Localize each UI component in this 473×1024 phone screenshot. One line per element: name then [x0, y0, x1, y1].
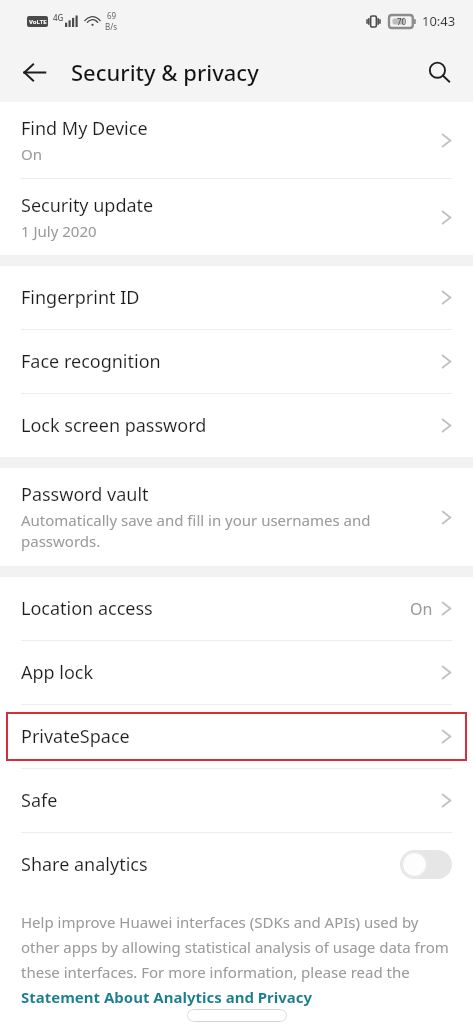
button[interactable]: Lock screen password [0, 394, 473, 457]
staticText: B/s [105, 21, 118, 32]
staticText: Safe [21, 788, 441, 813]
staticText: On [410, 598, 433, 620]
button[interactable]: Safe [0, 769, 473, 832]
staticText: 69 [107, 10, 117, 21]
button[interactable]: Security update [0, 179, 473, 255]
staticText: Automatically save and fill in your user… [21, 510, 429, 552]
staticText: 1 July 2020 [21, 221, 97, 241]
staticText: Security update [21, 193, 154, 218]
staticText: PrivateSpace [21, 724, 441, 749]
button[interactable]: Share analytics [0, 833, 473, 896]
button[interactable]: PrivateSpace [6, 712, 467, 761]
staticText: 4G [53, 12, 64, 23]
staticText: Share analytics [21, 852, 400, 877]
button[interactable]: Fingerprint ID [0, 266, 473, 329]
button[interactable]: Find My Device [0, 102, 473, 178]
staticText: Password vault [21, 482, 149, 507]
staticText: Help improve Huawei interfaces (SDKs and… [21, 912, 452, 1007]
button[interactable]: Password vault [0, 468, 473, 566]
button[interactable]: Location access [0, 577, 473, 640]
button[interactable]: Search [415, 48, 463, 96]
staticText: 70 [397, 16, 407, 27]
button[interactable]: App lock [0, 641, 473, 704]
staticText: On [21, 144, 42, 164]
staticText: 10:43 [422, 12, 456, 30]
staticText: Face recognition [21, 349, 441, 374]
staticText: Find My Device [21, 116, 148, 141]
button[interactable]: Back [10, 48, 58, 96]
button[interactable]: Face recognition [0, 330, 473, 393]
staticText: Security & privacy [71, 57, 259, 87]
staticText: App lock [21, 660, 441, 685]
staticText: Lock screen password [21, 413, 441, 438]
staticText: VoLTE [29, 18, 47, 26]
staticText: Fingerprint ID [21, 285, 441, 310]
staticText: Location access [21, 596, 410, 621]
